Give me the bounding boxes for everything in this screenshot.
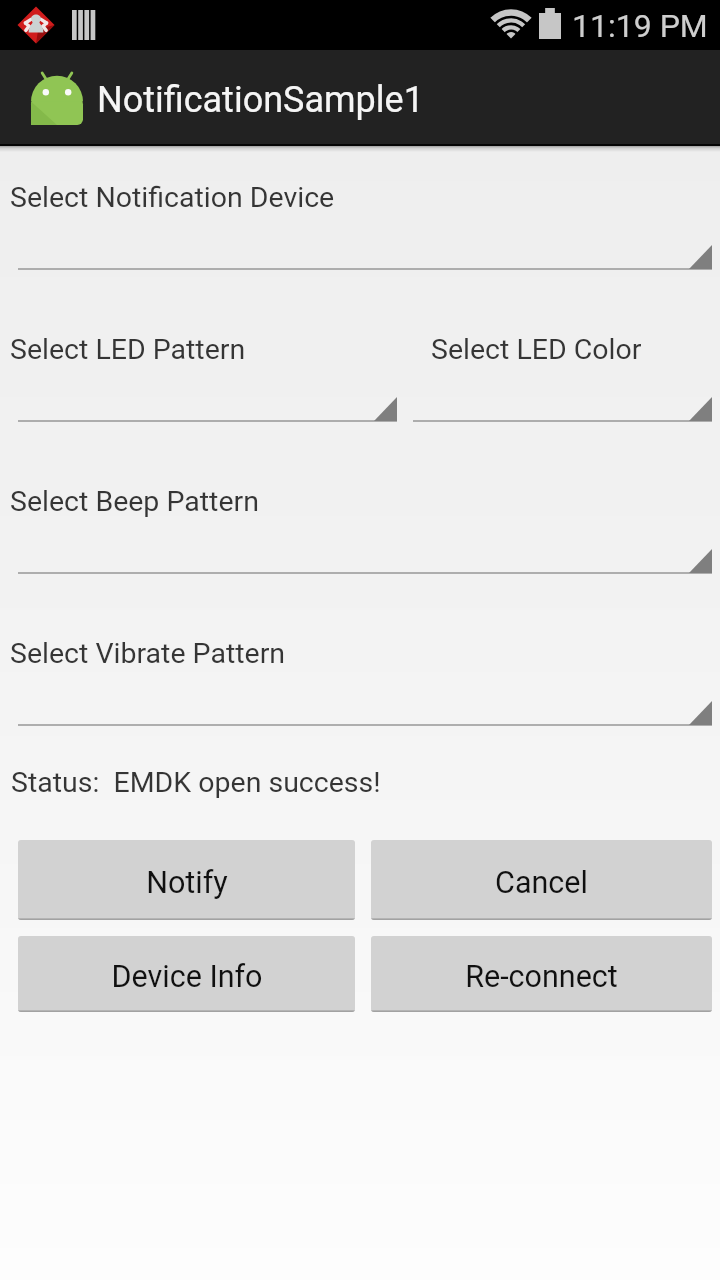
staticText: Device Info	[111, 959, 263, 995]
other: Wi-Fi signal	[491, 9, 531, 39]
other: Scanner status	[72, 10, 96, 40]
staticText: Select Beep Pattern	[10, 485, 259, 518]
staticText: Status: EMDK open success!	[11, 766, 381, 799]
staticText: Select LED Pattern	[10, 333, 246, 366]
staticText: Cancel	[495, 865, 588, 901]
other: Battery	[539, 8, 561, 39]
staticText: Select LED Color	[431, 333, 642, 366]
button[interactable]: Select Notification Device	[18, 241, 712, 275]
button[interactable]: Select Beep Pattern	[18, 545, 712, 579]
staticText: Notify	[146, 865, 228, 901]
other: App icon	[31, 71, 83, 125]
button[interactable]: Re-connect	[371, 936, 712, 1012]
staticText: Select Notification Device	[10, 181, 335, 214]
staticText: Select Vibrate Pattern	[10, 637, 286, 670]
staticText: NotificationSample1	[97, 79, 424, 121]
button[interactable]: Device Info	[18, 936, 355, 1012]
button[interactable]: Select LED Color	[413, 393, 712, 427]
other: Notification	[16, 5, 56, 45]
staticText: 11:19 PM	[572, 7, 708, 45]
button[interactable]: Cancel	[371, 840, 712, 920]
staticText: Re-connect	[465, 959, 618, 995]
button[interactable]: Select LED Pattern	[18, 393, 397, 427]
button[interactable]: Notify	[18, 840, 355, 920]
button[interactable]: Select Vibrate Pattern	[18, 697, 712, 731]
